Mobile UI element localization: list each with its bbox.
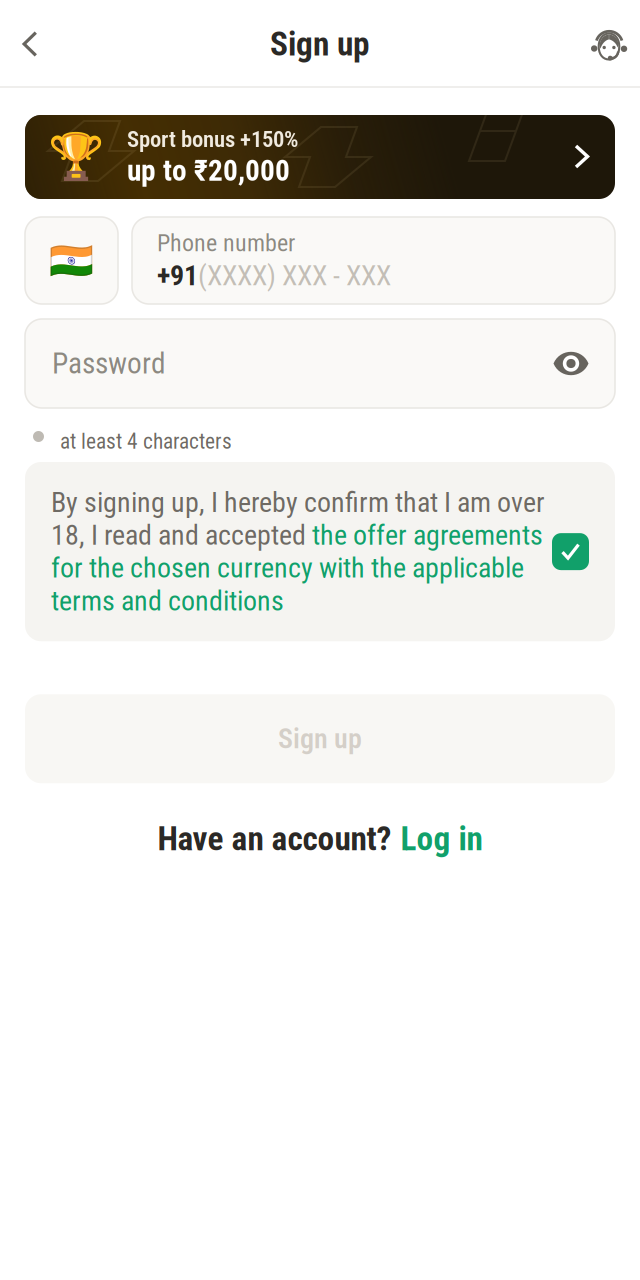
button[interactable]: Log in: [400, 819, 482, 858]
staticText: terms and conditions: [51, 584, 284, 617]
staticText: Sign up: [270, 24, 370, 64]
staticText: Log in: [400, 819, 482, 858]
staticText: Phone number: [157, 229, 295, 257]
button[interactable]: Accept terms and conditions: [552, 533, 589, 570]
staticText: up to ₹20,000: [127, 154, 290, 188]
staticText: Password: [52, 346, 166, 381]
staticText: (XXXX) XXX - XXX: [198, 259, 391, 292]
staticText: for the chosen currency with the applica…: [51, 552, 524, 584]
staticText: 18, I read and accepted: [51, 519, 312, 552]
button[interactable]: Phone number: [132, 217, 615, 304]
staticText: the offer agreements: [312, 519, 543, 552]
button[interactable]: Sign up: [25, 694, 615, 783]
button[interactable]: Customer support: [580, 12, 636, 76]
button[interactable]: Country code, India: [25, 217, 118, 304]
button[interactable]: Password: [25, 319, 615, 408]
button[interactable]: 🏆: [25, 115, 615, 199]
staticText: 🇮🇳: [49, 239, 94, 282]
staticText: Sign up: [278, 722, 362, 755]
staticText: at least 4 characters: [60, 429, 232, 454]
staticText: 🏆: [48, 130, 104, 183]
button[interactable]: Back: [2, 12, 58, 76]
staticText: Have an account?: [157, 819, 391, 858]
staticText: +91: [157, 259, 198, 292]
staticText: Sport bonus +150%: [127, 126, 298, 153]
staticText: By signing up, I hereby confirm that I a…: [51, 486, 545, 519]
